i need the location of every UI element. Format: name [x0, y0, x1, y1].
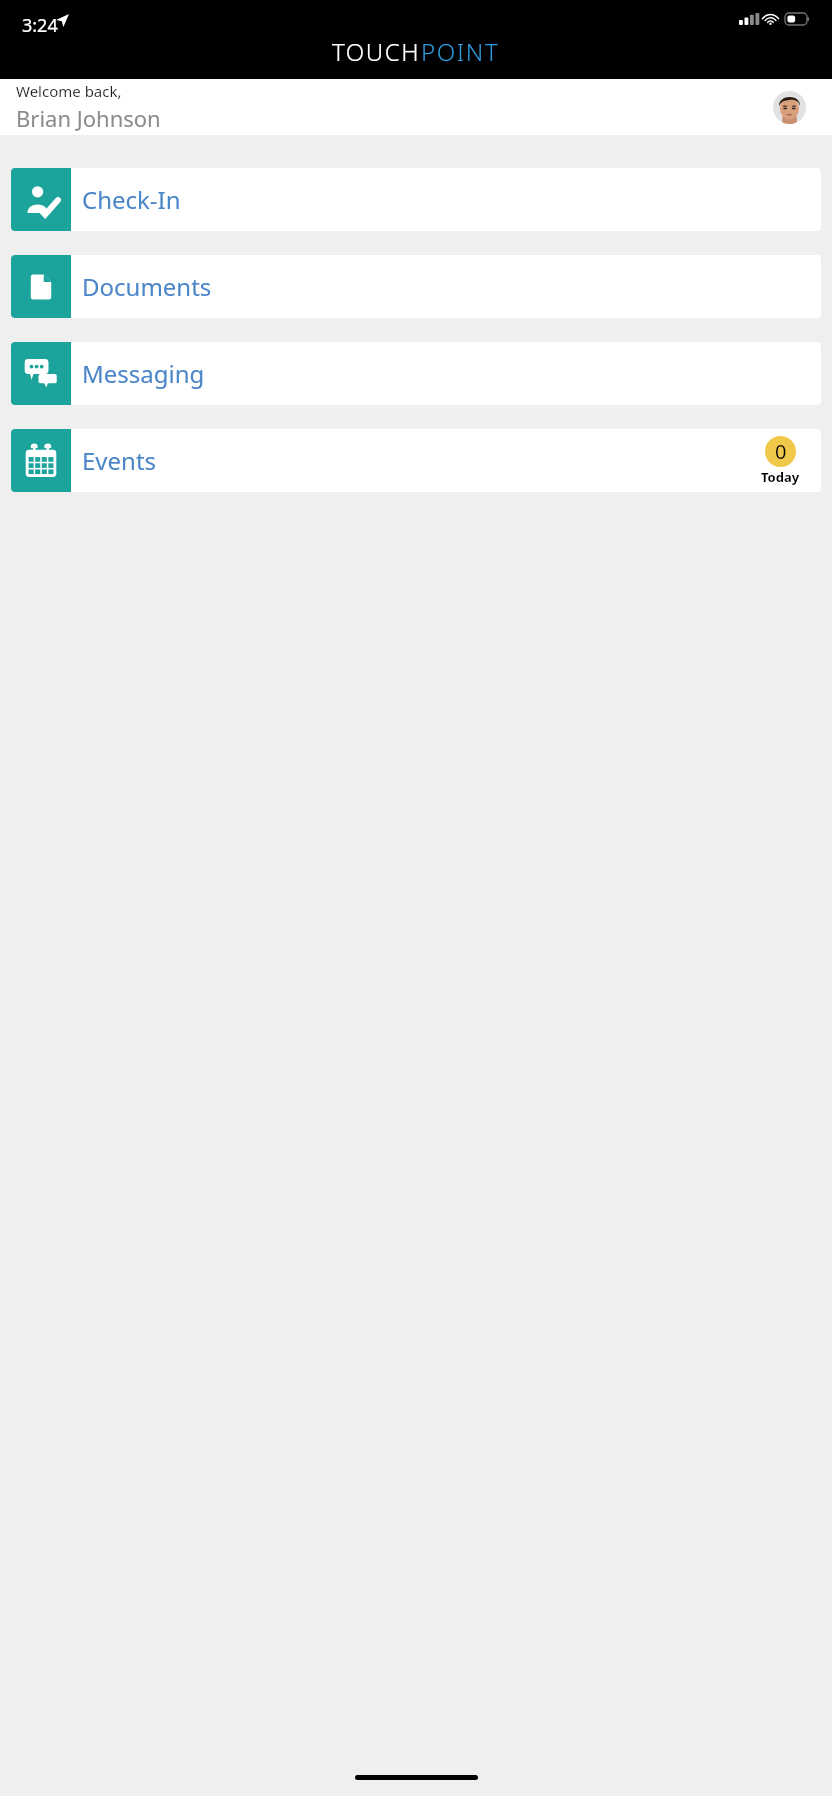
staticText: POINT: [421, 35, 500, 68]
staticText: 0: [775, 438, 787, 465]
staticText: Events: [82, 444, 157, 477]
staticText: Documents: [82, 270, 212, 303]
button[interactable]: Check-In: [11, 168, 821, 231]
staticText: 3:24: [22, 13, 58, 38]
staticText: Brian Johnson: [16, 103, 161, 133]
staticText: Today: [761, 468, 800, 486]
staticText: Messaging: [82, 357, 205, 390]
button[interactable]: Documents: [11, 255, 821, 318]
button[interactable]: Events: [11, 429, 821, 492]
staticText: TOUCH: [332, 35, 421, 68]
staticText: Check-In: [82, 183, 181, 216]
button[interactable]: Profile: [773, 91, 806, 124]
staticText: Welcome back,: [16, 81, 122, 101]
button[interactable]: Messaging: [11, 342, 821, 405]
